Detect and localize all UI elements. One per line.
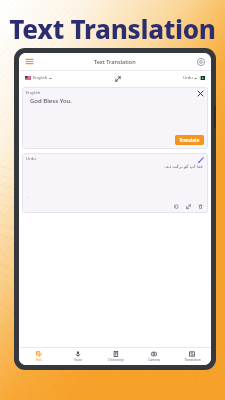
staticText: Translation (184, 358, 201, 362)
staticText: Text Translation (0, 11, 225, 46)
staticText: خدا آپ کو برکت دے۔ (163, 163, 203, 169)
button[interactable]: Urdu (22, 153, 208, 213)
staticText: Text (35, 358, 42, 362)
button[interactable]: Translation (173, 348, 211, 365)
button[interactable]: Urdu (182, 74, 206, 82)
staticText: Translate (179, 137, 200, 143)
staticText: Dictionary (108, 358, 124, 362)
button[interactable]: Settings (195, 56, 206, 67)
button[interactable]: Swap languages (112, 73, 123, 84)
staticText: English (33, 75, 48, 81)
button[interactable]: Text (19, 348, 58, 365)
button[interactable]: Dictionary (97, 348, 135, 365)
button[interactable]: Share (184, 202, 192, 210)
staticText: Camera (148, 358, 160, 362)
staticText: Text Translation (94, 58, 136, 65)
staticText: ۔ (26, 194, 29, 199)
button[interactable]: Menu (24, 56, 35, 67)
staticText: God Bless You. (30, 97, 72, 105)
staticText: Voice (74, 358, 82, 362)
staticText: Urdu (183, 75, 193, 81)
button[interactable]: English (24, 74, 53, 82)
button[interactable]: Clear text (196, 89, 205, 98)
button[interactable]: Voice (58, 348, 97, 365)
button[interactable]: Delete (196, 202, 204, 210)
staticText: English (26, 90, 41, 96)
button[interactable]: English (22, 87, 208, 149)
button[interactable]: Edit translation (196, 155, 205, 164)
staticText: Urdu (26, 156, 36, 162)
button[interactable]: Copy (172, 202, 180, 210)
button[interactable]: Camera (135, 348, 173, 365)
button[interactable]: Translate (175, 135, 204, 145)
